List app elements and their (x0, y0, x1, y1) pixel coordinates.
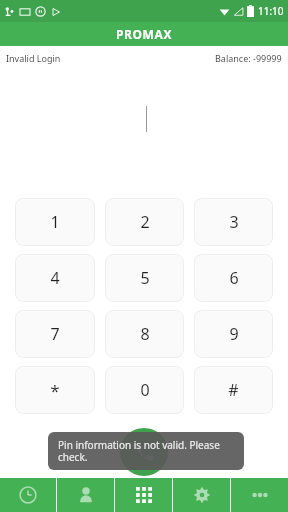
button[interactable]: 4 (15, 254, 95, 302)
button[interactable]: 8 (105, 310, 184, 358)
staticText: PROMAX (116, 26, 173, 42)
staticText: Invalid Login (6, 52, 61, 64)
button[interactable]: 6 (194, 254, 273, 302)
button[interactable]: 2 (105, 198, 184, 246)
staticText: 6 (229, 267, 239, 289)
button[interactable]: 3 (194, 198, 273, 246)
staticText: 3 (229, 211, 239, 233)
staticText: # (228, 379, 239, 401)
button[interactable]: 0 (105, 366, 184, 414)
staticText: 5 (140, 267, 150, 289)
staticText: 1 (50, 211, 60, 233)
button[interactable]: 7 (15, 310, 95, 358)
button[interactable]: 1 (15, 198, 95, 246)
staticText: * (50, 379, 60, 402)
button[interactable]: 9 (194, 310, 273, 358)
button[interactable]: * (15, 366, 95, 414)
button[interactable]: # (194, 366, 273, 414)
staticText: 9 (229, 323, 239, 345)
button[interactable]: Contacts (57, 478, 114, 512)
button[interactable]: Recent (0, 478, 56, 512)
staticText: 0 (140, 379, 150, 401)
button[interactable]: More (231, 478, 288, 512)
button[interactable]: 5 (105, 254, 184, 302)
staticText: Balance: -99999 (215, 52, 282, 64)
staticText: 7 (50, 323, 60, 345)
staticText: Pin information is not valid. Please che… (58, 438, 234, 464)
button[interactable]: Call (120, 428, 168, 476)
staticText: 8 (140, 323, 150, 345)
button[interactable]: Keypad (115, 478, 172, 512)
staticText: 2 (140, 211, 150, 233)
staticText: 11:10 (258, 4, 284, 18)
button[interactable]: Settings (173, 478, 230, 512)
staticText: 4 (50, 267, 60, 289)
